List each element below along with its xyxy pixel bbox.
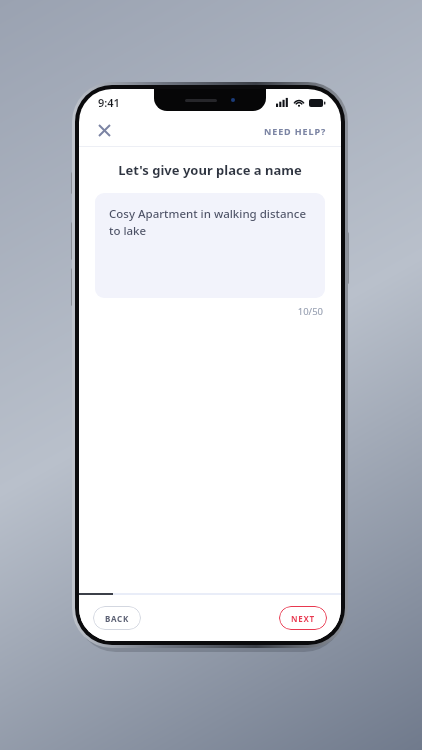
- button[interactable]: Close: [88, 115, 120, 146]
- staticText: 10/50: [79, 305, 323, 318]
- staticText: NEED HELP?: [264, 125, 327, 137]
- staticText: Let's give your place a name: [79, 161, 341, 179]
- staticText: NEXT: [291, 613, 315, 624]
- staticText: Cosy Apartment in walking distance to la…: [109, 206, 311, 239]
- button[interactable]: BACK: [93, 606, 141, 630]
- button[interactable]: NEED HELP?: [250, 119, 341, 143]
- staticText: 9:41: [98, 95, 120, 110]
- staticText: BACK: [105, 613, 129, 624]
- button[interactable]: Cosy Apartment in walking distance to la…: [95, 193, 325, 298]
- button[interactable]: NEXT: [279, 606, 327, 630]
